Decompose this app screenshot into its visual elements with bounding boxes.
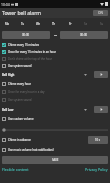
staticText: We xyxy=(36,22,41,26)
button[interactable]: Use system sound xyxy=(0,62,110,69)
button[interactable]: Flexible content xyxy=(2,167,29,172)
staticText: Use custom volume xyxy=(8,117,34,121)
button[interactable]: 00:00 xyxy=(2,31,50,39)
button[interactable]: Privacy Policy xyxy=(85,167,108,172)
staticText: 00:00 xyxy=(22,33,30,37)
staticText: 10 s xyxy=(95,138,101,142)
staticText: 00:00 xyxy=(80,33,88,37)
button[interactable]: Choose sound xyxy=(83,106,88,113)
staticText: Sa xyxy=(84,22,88,26)
button[interactable]: Chime every hour xyxy=(0,80,110,88)
button[interactable]: Chime in advance xyxy=(0,134,88,145)
button[interactable]: 10 s xyxy=(88,136,108,144)
button[interactable]: 00:00 xyxy=(60,31,108,39)
staticText: Use system sound xyxy=(8,98,32,102)
button[interactable]: Fr xyxy=(62,18,78,30)
button[interactable]: Sa xyxy=(78,18,94,30)
button[interactable]: Use music volume (not notification) xyxy=(0,145,110,154)
staticText: Bell High xyxy=(2,73,15,77)
staticText: Chime every hour xyxy=(8,82,31,86)
staticText: Th xyxy=(52,22,56,26)
button[interactable]: Th xyxy=(46,18,62,30)
button[interactable]: Chime every 15 minutes xyxy=(0,41,110,48)
button[interactable]: Mo xyxy=(0,18,15,30)
button[interactable]: Choose sound xyxy=(83,71,88,78)
button[interactable]: Su xyxy=(94,18,110,30)
button[interactable]: ON xyxy=(93,10,108,16)
staticText: Once for every hour in a day xyxy=(8,90,45,94)
button[interactable]: Tu xyxy=(15,18,30,30)
staticText: Tu xyxy=(21,22,25,26)
button[interactable]: We xyxy=(30,18,46,30)
button[interactable]: Once for every hour in a day xyxy=(0,88,110,96)
button[interactable]: Play sound xyxy=(94,71,108,78)
staticText: Su xyxy=(100,22,104,26)
staticText: Chime in advance xyxy=(8,138,31,142)
button[interactable]: SAVE xyxy=(2,156,108,164)
staticText: Chime every 15 minutes xyxy=(8,43,40,47)
staticText: Fr xyxy=(69,22,72,26)
staticText: Use system sound xyxy=(8,64,32,68)
button[interactable]: Once for every 15 minutes in an hour xyxy=(0,48,110,55)
staticText: Don't chime at the top of the hour xyxy=(8,57,52,61)
staticText: Mo xyxy=(5,22,10,26)
staticText: SAVE xyxy=(52,158,59,162)
button[interactable]: Play sound xyxy=(94,106,108,113)
button[interactable]: Use custom volume xyxy=(0,115,110,123)
button[interactable]: Don't chime at the top of the hour xyxy=(0,55,110,62)
button[interactable]: Use system sound xyxy=(0,96,110,104)
staticText: Tower bell alarm xyxy=(2,10,41,17)
staticText: ON xyxy=(98,11,103,15)
staticText: Use music volume (not notification) xyxy=(8,148,54,152)
staticText: Bell Low xyxy=(2,108,14,112)
staticText: Once for every 15 minutes in an hour xyxy=(8,50,56,54)
staticText: 10:04 xyxy=(1,2,10,7)
